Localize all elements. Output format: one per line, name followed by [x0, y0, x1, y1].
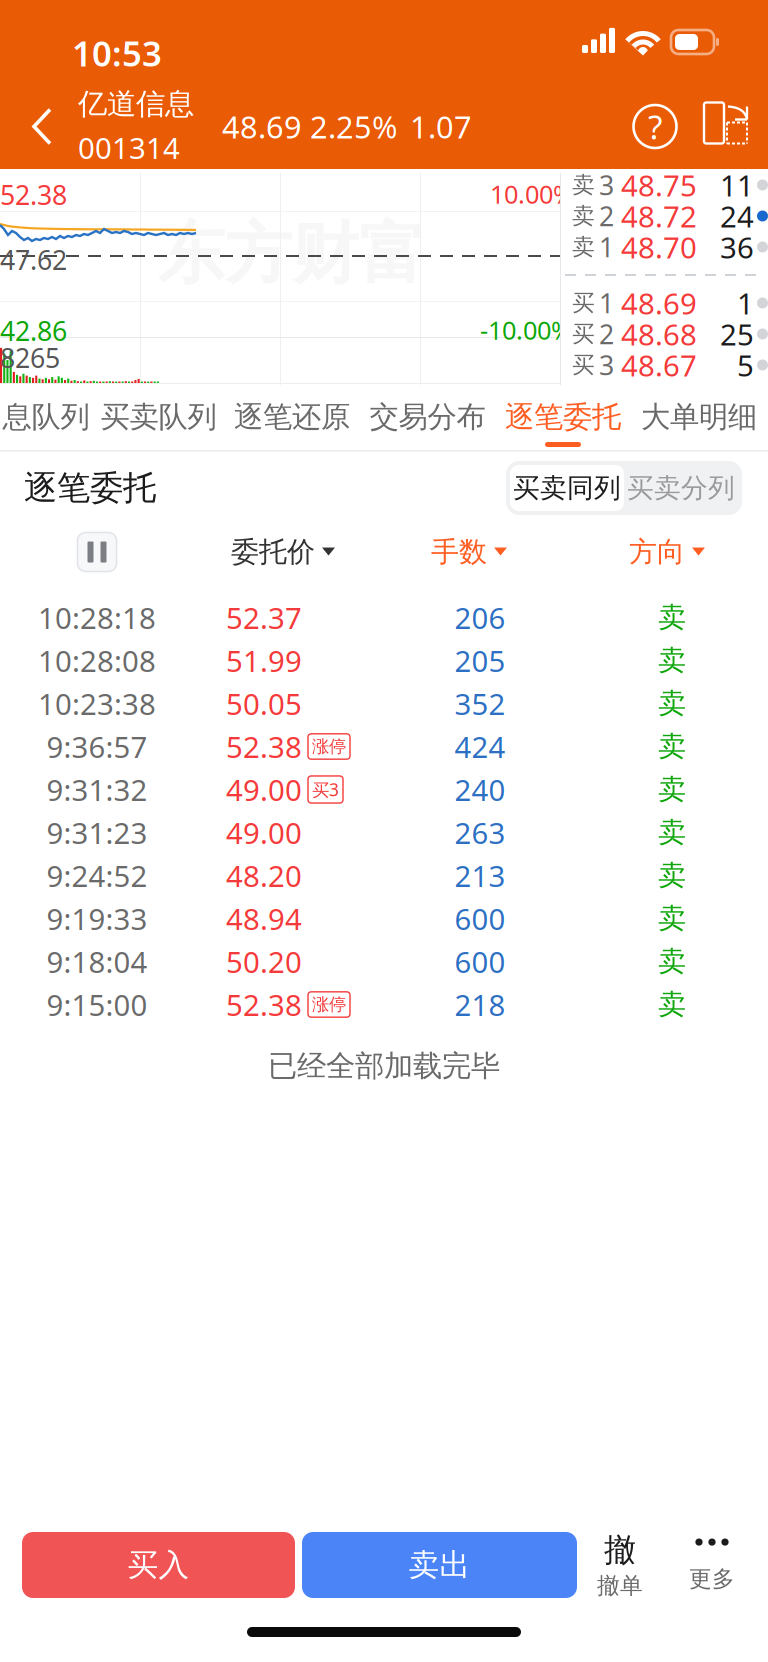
staticText: 10:28:08: [38, 641, 156, 680]
staticText: 424: [454, 727, 505, 766]
staticText: 亿道信息: [78, 86, 194, 122]
staticText: 9:31:23: [46, 813, 147, 852]
staticText: 3: [599, 347, 614, 383]
staticText: 206: [454, 598, 505, 637]
staticText: 52.38: [0, 177, 67, 212]
staticText: 240: [454, 770, 505, 809]
staticText: 1: [737, 283, 754, 322]
staticText: 10:53: [72, 30, 162, 76]
button[interactable]: 买卖同列: [510, 465, 624, 511]
button[interactable]: 息队列: [0, 385, 92, 450]
staticText: 8265: [0, 340, 60, 375]
button[interactable]: 买卖分列: [624, 465, 738, 511]
staticText: 逐笔委托: [24, 467, 156, 508]
staticText: 48.70: [621, 227, 697, 266]
staticText: 卖: [572, 202, 595, 230]
staticText: 卖: [572, 233, 595, 261]
staticText: 10:28:18: [38, 598, 156, 637]
staticText: 25: [720, 314, 754, 353]
staticText: 218: [454, 985, 505, 1024]
staticText: 买: [572, 320, 595, 348]
staticText: 卖: [658, 772, 686, 807]
staticText: 1.07: [410, 106, 472, 147]
button[interactable]: 撤: [586, 1530, 654, 1599]
staticText: 205: [454, 641, 505, 680]
staticText: 48.69: [222, 106, 302, 147]
staticText: 48.72: [621, 196, 697, 235]
staticText: 方向: [629, 535, 685, 569]
staticText: 001314: [78, 128, 180, 167]
staticText: 263: [454, 813, 505, 852]
staticText: 买入: [127, 1546, 189, 1584]
staticText: 撤: [604, 1530, 636, 1570]
staticText: 9:36:57: [46, 727, 147, 766]
staticText: 卖: [658, 729, 686, 764]
staticText: 卖: [658, 815, 686, 850]
staticText: 息队列: [2, 399, 89, 435]
staticText: 24: [720, 196, 754, 235]
staticText: 卖: [658, 944, 686, 979]
staticText: 卖: [658, 901, 686, 936]
staticText: 48.67: [621, 345, 697, 384]
staticText: 47.62: [0, 242, 67, 277]
button[interactable]: Pause: [77, 532, 116, 571]
button[interactable]: 买卖队列: [92, 385, 225, 450]
staticText: 逐笔还原: [234, 399, 350, 435]
staticText: 已经全部加载完毕: [268, 1048, 500, 1084]
staticText: 213: [454, 856, 505, 895]
staticText: 卖: [658, 987, 686, 1022]
staticText: 2.25%: [310, 106, 397, 147]
staticText: 51.99: [226, 641, 302, 680]
staticText: 352: [454, 684, 505, 723]
staticText: 5: [737, 345, 754, 384]
button[interactable]: 交易分布: [359, 385, 496, 450]
staticText: 更多: [689, 1565, 735, 1593]
staticText: 9:19:33: [46, 899, 147, 938]
staticText: 49.00: [226, 770, 302, 809]
staticText: 9:15:00: [46, 985, 147, 1024]
staticText: 卖: [572, 171, 595, 199]
staticText: 48.69: [621, 283, 697, 322]
staticText: 卖: [658, 600, 686, 635]
staticText: 买卖同列: [513, 472, 621, 504]
staticText: 52.37: [226, 598, 302, 637]
staticText: 48.94: [226, 899, 302, 938]
staticText: 大单明细: [641, 399, 757, 435]
staticText: 交易分布: [369, 399, 485, 435]
staticText: 撤单: [597, 1572, 643, 1599]
button[interactable]: 方向: [629, 529, 705, 575]
button[interactable]: Help: [633, 84, 677, 169]
staticText: 600: [454, 942, 505, 981]
staticText: 卖: [658, 643, 686, 678]
button[interactable]: 逐笔委托: [496, 385, 630, 450]
staticText: 9:24:52: [46, 856, 147, 895]
staticText: 50.05: [226, 684, 302, 723]
button[interactable]: 委托价: [231, 529, 335, 575]
button[interactable]: 手数: [431, 529, 507, 575]
staticText: 9:31:32: [46, 770, 147, 809]
staticText: 委托价: [231, 535, 315, 569]
button[interactable]: 逐笔还原: [225, 385, 359, 450]
staticText: 1: [599, 229, 614, 265]
staticText: 52.38: [226, 985, 302, 1024]
button[interactable]: Split screen: [703, 84, 751, 169]
staticText: 涨停: [312, 736, 346, 757]
staticText: 49.00: [226, 813, 302, 852]
staticText: 卖: [658, 686, 686, 721]
staticText: 涨停: [312, 994, 346, 1015]
staticText: 买: [572, 351, 595, 379]
staticText: ?: [648, 104, 662, 149]
staticText: 48.75: [621, 165, 697, 204]
staticText: 逐笔委托: [505, 399, 621, 435]
staticText: 600: [454, 899, 505, 938]
button[interactable]: 大单明细: [630, 385, 768, 450]
button[interactable]: 更多: [678, 1537, 746, 1593]
staticText: 卖: [658, 858, 686, 893]
button[interactable]: 卖出: [302, 1532, 577, 1598]
button[interactable]: 买入: [22, 1532, 295, 1598]
staticText: -10.00%: [480, 313, 572, 347]
staticText: 3: [599, 167, 614, 203]
staticText: 东方财富: [158, 213, 426, 295]
staticText: 买3: [312, 778, 339, 801]
button[interactable]: Back: [18, 84, 66, 169]
